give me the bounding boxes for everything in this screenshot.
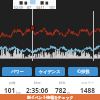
staticText: 87 bbox=[27, 5, 31, 9]
staticText: ケイデンス bbox=[39, 69, 61, 74]
staticText: 時間 bbox=[34, 81, 41, 85]
staticText: 心拍数 bbox=[77, 69, 90, 74]
staticText: m bbox=[67, 91, 70, 95]
staticText: 101 bbox=[4, 86, 16, 95]
staticText: カロリー bbox=[81, 81, 94, 85]
staticText: 新イベント情報をチェック bbox=[27, 95, 74, 100]
button[interactable]: Segment summary bbox=[13, 0, 56, 9]
button[interactable]: ケイデンス bbox=[35, 67, 65, 76]
staticText: 距離 bbox=[9, 81, 16, 85]
staticText: パワー bbox=[11, 69, 24, 74]
staticText: 34:11 bbox=[36, 5, 45, 9]
button[interactable]: 心拍数 bbox=[68, 67, 98, 76]
staticText: 101 bbox=[49, 5, 55, 9]
staticText: 1488 bbox=[80, 86, 95, 95]
staticText: km bbox=[16, 91, 21, 95]
button[interactable]: パワー bbox=[2, 67, 32, 76]
button[interactable]: 新イベント情報をチェック bbox=[0, 94, 100, 100]
staticText: 2:35:06 bbox=[26, 86, 49, 95]
staticText: 標高 bbox=[59, 81, 66, 85]
staticText: 52:39 bbox=[14, 5, 23, 9]
staticText: 782 bbox=[55, 86, 67, 95]
